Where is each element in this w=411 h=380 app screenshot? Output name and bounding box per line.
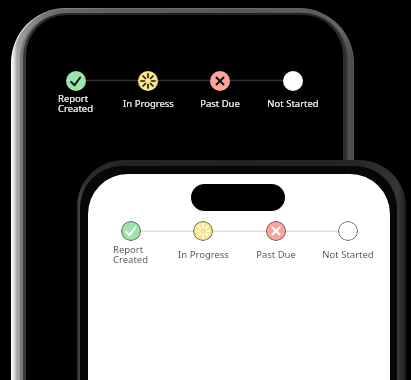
button[interactable]: Not Started — [258, 91, 328, 115]
button[interactable]: Not Started — [313, 242, 383, 266]
button[interactable]: Report Created — [121, 221, 141, 241]
staticText: Past Due — [256, 248, 296, 261]
button[interactable]: Not Started — [338, 221, 358, 241]
button[interactable]: Not Started — [283, 71, 303, 91]
button[interactable]: In Progress — [113, 91, 183, 115]
staticText: Not Started — [267, 97, 319, 110]
staticText: In Progress — [178, 248, 229, 261]
staticText: In Progress — [123, 97, 174, 110]
button[interactable]: In Progress — [193, 221, 213, 241]
staticText: Past Due — [200, 97, 240, 110]
staticText: Report Created — [58, 92, 94, 115]
button[interactable]: In Progress — [138, 71, 158, 91]
button[interactable]: Report Created — [96, 242, 166, 266]
staticText: Not Started — [322, 248, 374, 261]
button[interactable]: Past Due — [241, 242, 311, 266]
button[interactable]: Past Due — [210, 71, 230, 91]
button[interactable]: In Progress — [168, 242, 238, 266]
button[interactable]: Report Created — [41, 91, 111, 115]
staticText: Report Created — [113, 243, 149, 266]
button[interactable]: Past Due — [185, 91, 255, 115]
button[interactable]: Report Created — [66, 71, 86, 91]
button[interactable]: Past Due — [266, 221, 286, 241]
